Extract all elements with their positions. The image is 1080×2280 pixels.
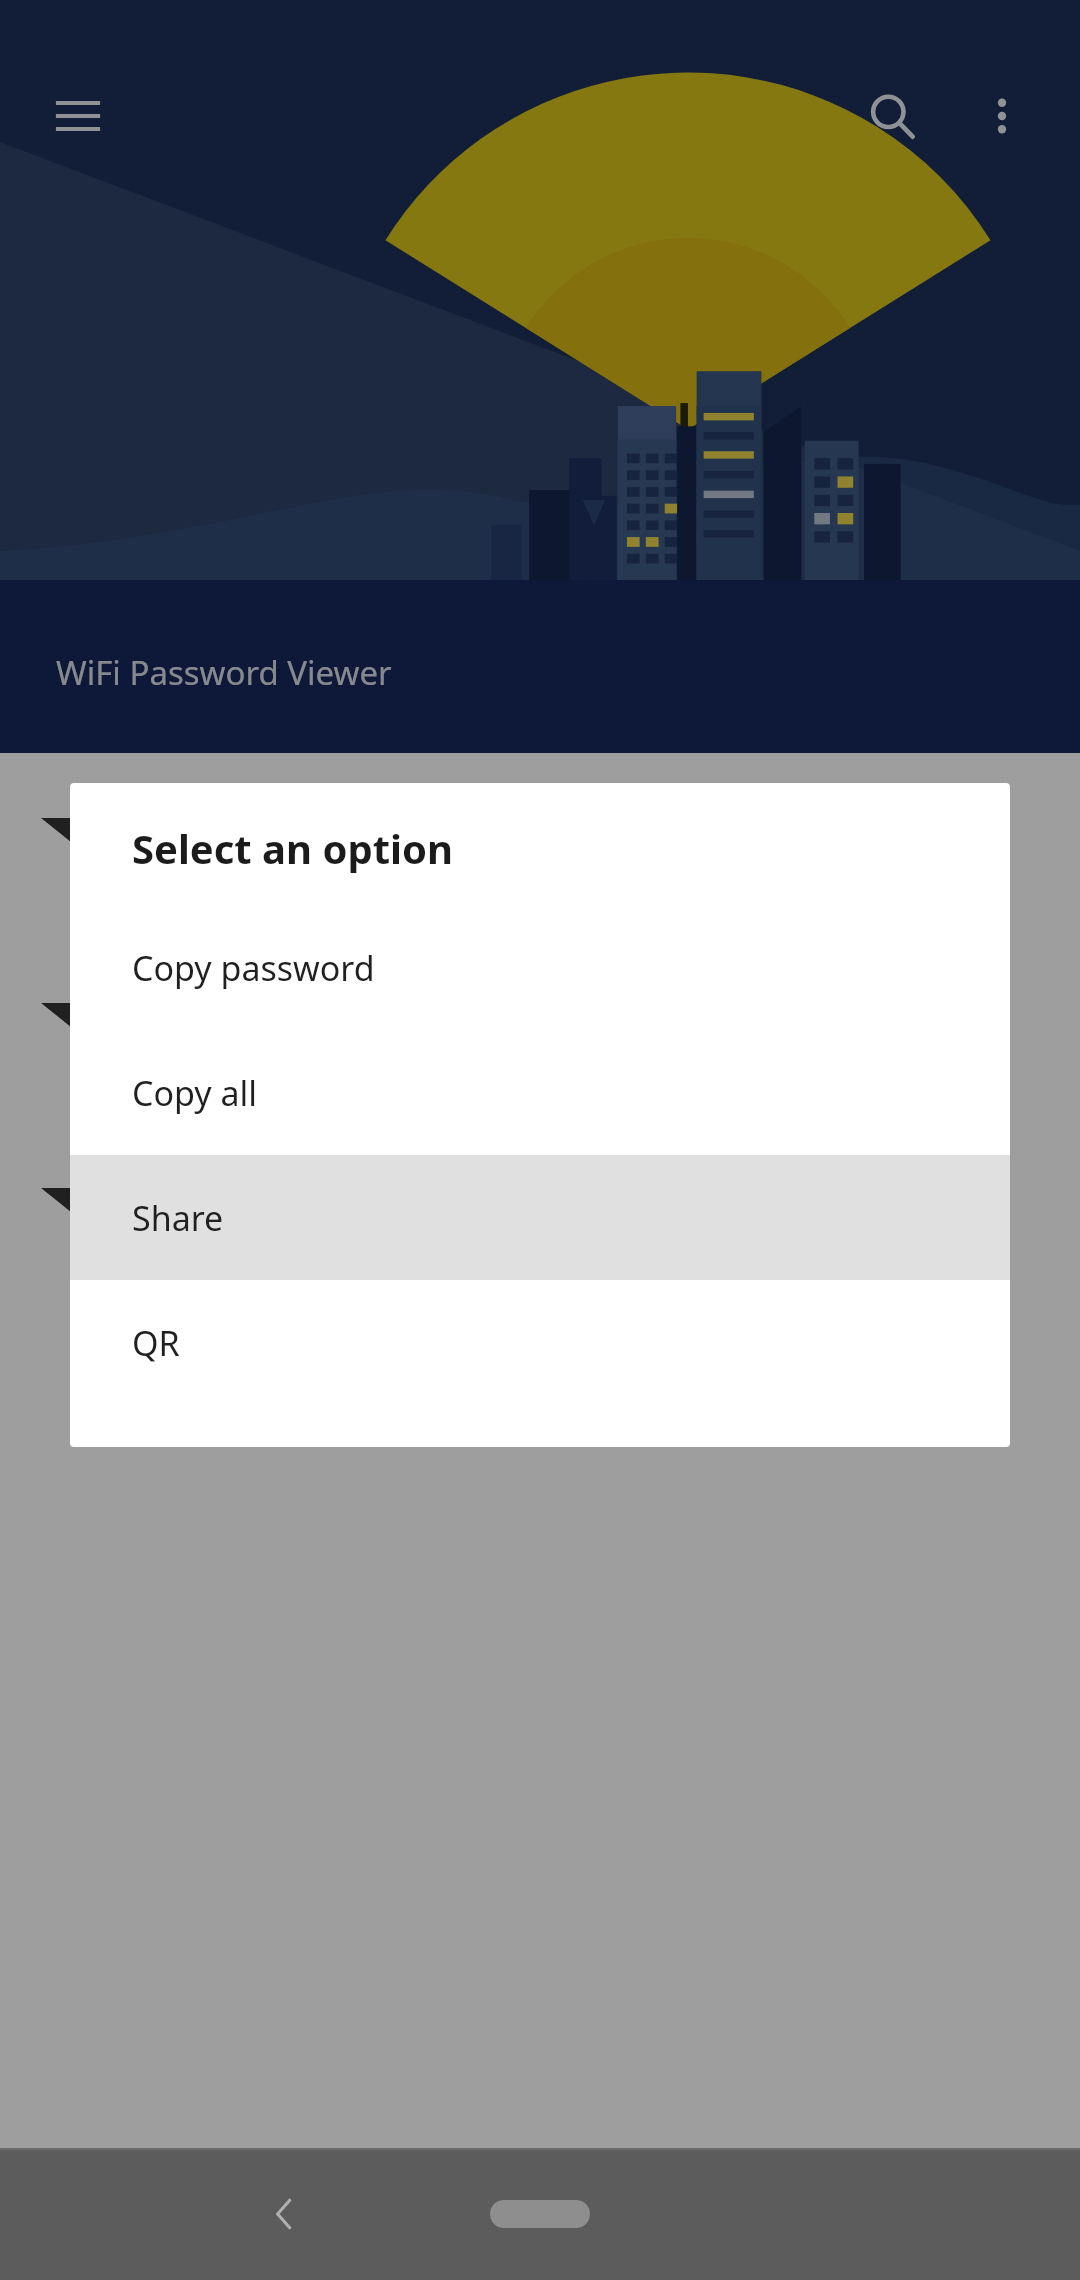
staticText: Copy all — [132, 1070, 258, 1116]
staticText: Copy password — [132, 945, 375, 991]
staticText: Share — [132, 1195, 224, 1241]
button[interactable]: QR — [70, 1280, 1010, 1405]
button[interactable]: Back — [236, 2166, 332, 2262]
staticText: QR — [132, 1320, 180, 1366]
button[interactable]: Copy password — [70, 905, 1010, 1030]
staticText: WiFi Password Viewer — [56, 650, 392, 695]
button[interactable]: More options — [954, 68, 1050, 164]
staticText: Select an option — [132, 821, 454, 875]
button[interactable]: Share — [70, 1155, 1010, 1280]
button[interactable]: Open navigation menu — [30, 68, 126, 164]
button[interactable]: Search — [844, 68, 940, 164]
button[interactable]: Home — [490, 2200, 590, 2228]
button[interactable]: Copy all — [70, 1030, 1010, 1155]
